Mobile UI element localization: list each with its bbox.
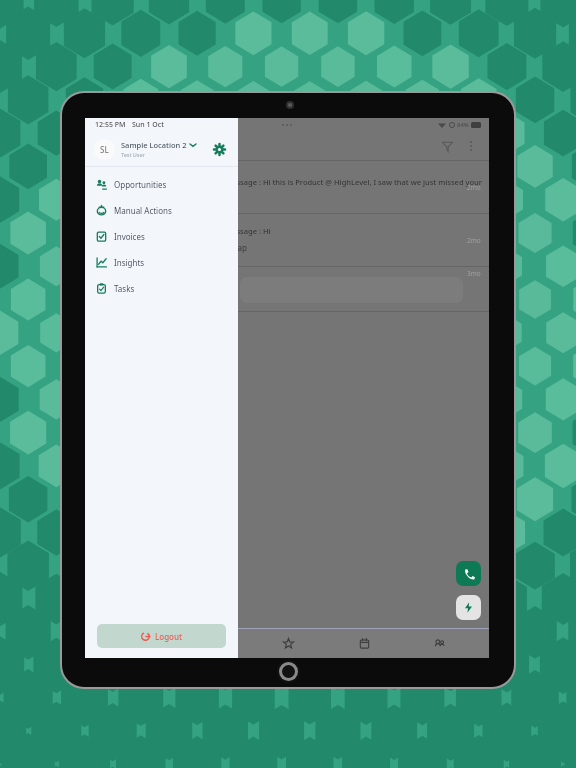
- button[interactable]: SL: [85, 132, 238, 166]
- staticText: Test User: [121, 151, 145, 158]
- staticText: Tasks: [114, 283, 135, 294]
- button[interactable]: Quick actions: [456, 595, 481, 620]
- staticText: Sun 1 Oct: [132, 120, 164, 130]
- button[interactable]: message : Hi this is Product @ HighLevel…: [85, 161, 489, 213]
- button[interactable]: Tasks: [85, 275, 238, 301]
- staticText: 12:55 PM: [95, 120, 126, 130]
- staticText: Opportunities: [114, 179, 167, 190]
- button[interactable]: Invoices: [85, 223, 238, 249]
- staticText: message : Hi: [225, 226, 271, 236]
- button[interactable]: Logout: [97, 624, 226, 648]
- button[interactable]: Manual Actions: [85, 197, 238, 223]
- button[interactable]: message : Hi: [85, 214, 489, 266]
- button[interactable]: Settings: [209, 139, 229, 159]
- button[interactable]: Favorites: [263, 629, 313, 658]
- staticText: Insights: [114, 257, 145, 268]
- staticText: Invoices: [114, 231, 145, 242]
- button[interactable]: Call: [456, 561, 481, 586]
- staticText: 2mo: [467, 236, 481, 245]
- button[interactable]: Filter: [435, 134, 459, 158]
- button[interactable]: Opportunities: [85, 171, 238, 197]
- staticText: Sample Location 2: [121, 140, 187, 150]
- button[interactable]: Calendar: [339, 629, 389, 658]
- staticText: & Zap: [225, 242, 247, 253]
- button[interactable]: Insights: [85, 249, 238, 275]
- button[interactable]: Contacts: [414, 629, 464, 658]
- staticText: 3mo: [467, 269, 481, 278]
- staticText: message : Hi this is Product @ HighLevel…: [225, 177, 482, 187]
- staticText: 2mo: [467, 183, 481, 192]
- staticText: Logout: [155, 631, 183, 642]
- staticText: Manual Actions: [114, 205, 172, 216]
- staticText: SL: [100, 144, 109, 155]
- staticText: 84%: [457, 121, 469, 129]
